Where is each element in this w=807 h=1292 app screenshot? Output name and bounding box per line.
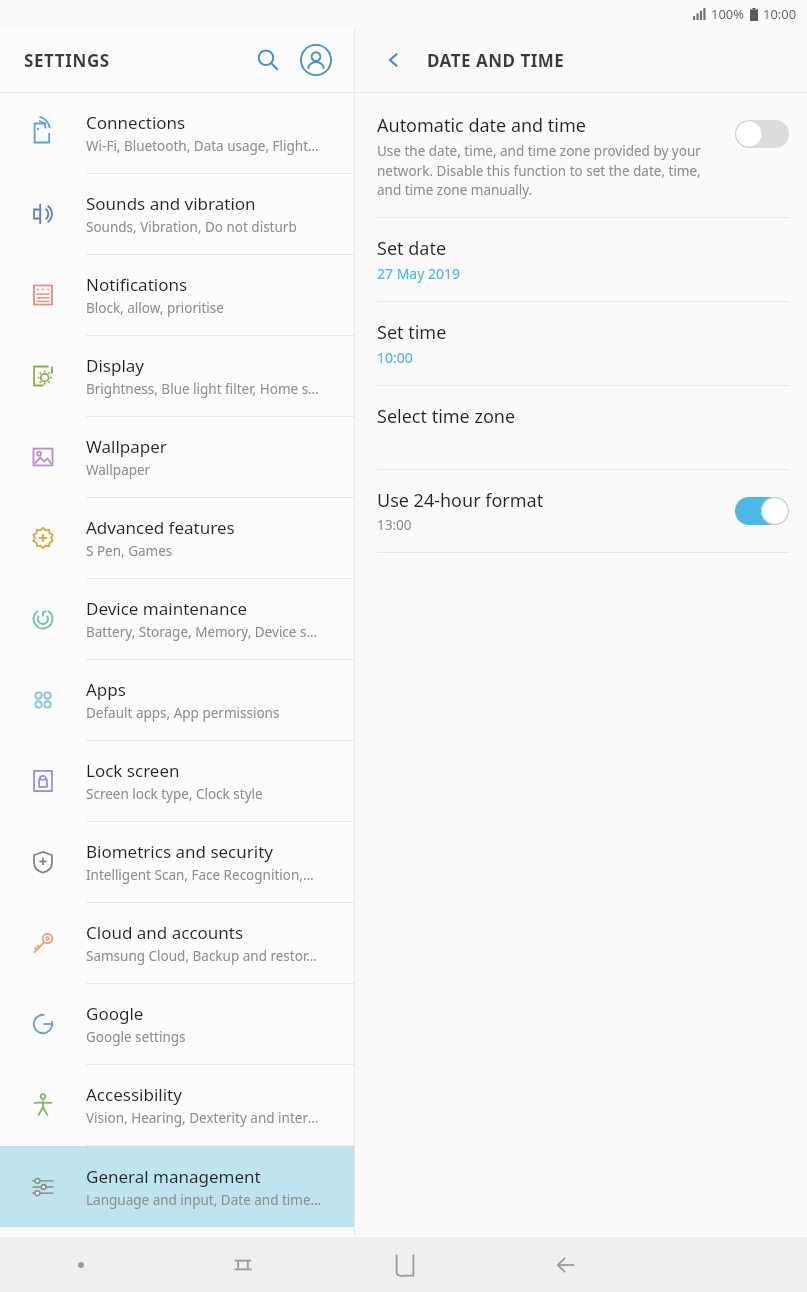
button[interactable]: Select time zone	[355, 386, 807, 469]
button[interactable]: Connections	[0, 93, 354, 174]
staticText: Default apps, App permissions	[86, 704, 280, 722]
button[interactable]: Recents	[162, 1237, 324, 1292]
staticText: Cloud and accounts	[86, 921, 244, 944]
staticText: General management	[86, 1165, 261, 1188]
button[interactable]: Set date	[355, 218, 807, 301]
staticText: Connections	[86, 111, 186, 134]
staticText: 100%	[711, 5, 745, 23]
button[interactable]: Back	[373, 39, 415, 81]
staticText: Set time	[377, 320, 447, 345]
staticText: Use 24-hour format	[377, 488, 544, 513]
staticText: Language and input, Date and time,…	[86, 1191, 324, 1209]
button[interactable]: Accessibility	[0, 1065, 354, 1146]
staticText: Automatic date and time	[377, 113, 586, 138]
staticText: Apps	[86, 678, 126, 701]
button[interactable]: Biometrics and security	[0, 822, 354, 903]
button[interactable]: Notifications	[0, 255, 354, 336]
button[interactable]: Back	[485, 1237, 646, 1292]
staticText: SETTINGS	[24, 49, 110, 72]
button[interactable]: Toggle off	[735, 119, 789, 149]
staticText: Wallpaper	[86, 435, 167, 458]
staticText: Samsung Cloud, Backup and restor…	[86, 947, 317, 965]
staticText: 10:00	[763, 5, 797, 23]
staticText: Wallpaper	[86, 461, 151, 479]
staticText: Intelligent Scan, Face Recognition,…	[86, 866, 314, 884]
staticText: Biometrics and security	[86, 840, 273, 863]
staticText: S Pen, Games	[86, 542, 173, 560]
button[interactable]: Search	[246, 38, 290, 82]
staticText: Google	[86, 1002, 144, 1025]
staticText: Set date	[377, 236, 447, 261]
staticText: 27 May 2019	[377, 264, 461, 283]
button[interactable]: Google	[0, 984, 354, 1065]
staticText: Device maintenance	[86, 597, 248, 620]
button[interactable]: Toggle on	[735, 496, 789, 526]
button[interactable]: Apps	[0, 660, 354, 741]
staticText: Block, allow, prioritise	[86, 299, 224, 317]
button[interactable]: Display	[0, 336, 354, 417]
staticText: Advanced features	[86, 516, 235, 539]
staticText: Sounds and vibration	[86, 192, 256, 215]
staticText: Screen lock type, Clock style	[86, 785, 263, 803]
staticText: Notifications	[86, 273, 188, 296]
staticText: Display	[86, 354, 144, 377]
staticText: Sounds, Vibration, Do not disturb	[86, 218, 297, 236]
staticText: Brightness, Blue light filter, Home sc…	[86, 380, 324, 398]
button[interactable]: General management	[0, 1146, 354, 1227]
button[interactable]: Wallpaper	[0, 417, 354, 498]
button[interactable]: Device maintenance	[0, 579, 354, 660]
button[interactable]: Advanced features	[0, 498, 354, 579]
button[interactable]: Use 24-hour format	[355, 470, 807, 552]
button[interactable]: Lock screen	[0, 741, 354, 822]
button[interactable]: Set time	[355, 302, 807, 385]
staticText: Select time zone	[377, 404, 516, 429]
button[interactable]: Account	[294, 38, 338, 82]
button[interactable]: Cloud and accounts	[0, 903, 354, 984]
staticText: Wi-Fi, Bluetooth, Data usage, Flight…	[86, 137, 319, 155]
button[interactable]: Automatic date and time	[355, 93, 807, 217]
staticText: Vision, Hearing, Dexterity and intera…	[86, 1109, 324, 1127]
staticText: 10:00	[377, 348, 413, 367]
staticText: Google settings	[86, 1028, 186, 1046]
button[interactable]: Sounds and vibration	[0, 174, 354, 255]
staticText: 13:00	[377, 516, 412, 534]
button[interactable]: Home	[324, 1237, 485, 1292]
staticText: Accessibility	[86, 1083, 182, 1106]
button[interactable]: Dot	[0, 1237, 162, 1292]
staticText: Use the date, time, and time zone provid…	[377, 142, 719, 199]
staticText: Battery, Storage, Memory, Device se…	[86, 623, 324, 641]
staticText: Lock screen	[86, 759, 180, 782]
staticText: DATE AND TIME	[427, 49, 565, 72]
